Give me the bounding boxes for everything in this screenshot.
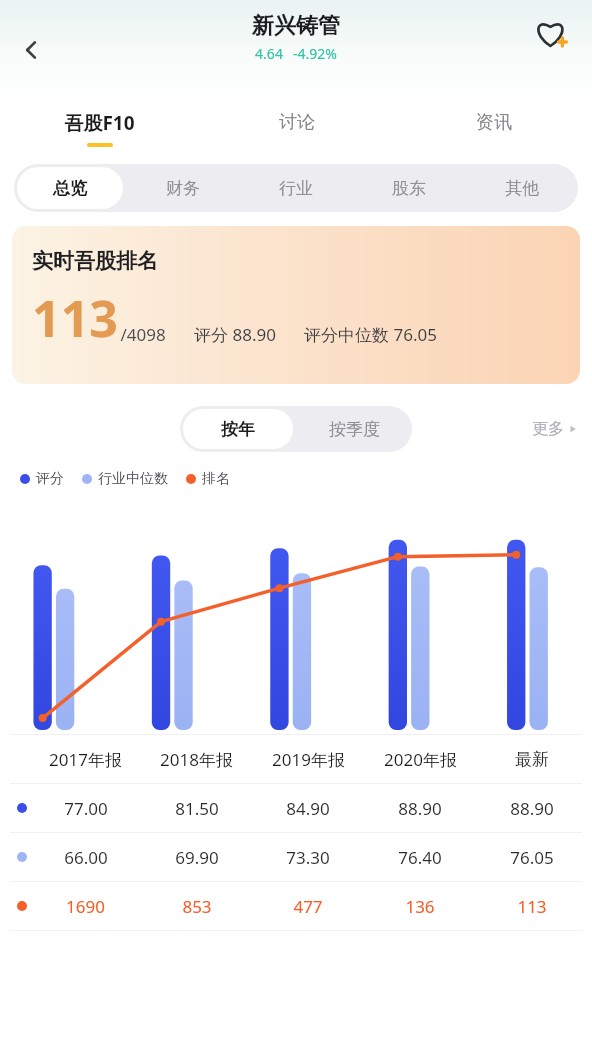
button[interactable]: 按季度 <box>299 409 409 449</box>
staticText: 其他 <box>505 178 539 199</box>
button[interactable]: 实时吾股排名 <box>12 226 580 384</box>
staticText: 113 <box>32 284 118 352</box>
staticText: 新兴铸管 <box>252 12 340 40</box>
staticText: 2017年报 <box>49 748 122 771</box>
staticText: 2019年报 <box>272 748 345 771</box>
staticText: 113 <box>517 895 547 918</box>
staticText: 吾股F10 <box>64 110 135 136</box>
button[interactable]: 股东 <box>355 167 462 209</box>
staticText: 4.64 <box>255 44 283 63</box>
button[interactable]: 资讯 <box>395 100 592 156</box>
staticText: 81.50 <box>175 797 219 820</box>
staticText: 136 <box>405 895 435 918</box>
button[interactable]: 按年 <box>183 409 293 449</box>
staticText: 评分中位数 76.05 <box>304 323 437 346</box>
staticText: 排名 <box>202 470 230 488</box>
staticText: 总览 <box>53 178 87 199</box>
staticText: 477 <box>293 895 323 918</box>
button[interactable]: 更多 <box>532 419 578 439</box>
staticText: 按季度 <box>329 419 380 440</box>
staticText: 88.90 <box>510 797 554 820</box>
button[interactable]: Add to favourites <box>524 6 580 62</box>
button[interactable]: 财务 <box>129 167 236 209</box>
staticText: 评分 88.90 <box>194 323 276 346</box>
staticText: 2020年报 <box>384 748 457 771</box>
staticText: 77.00 <box>64 797 108 820</box>
staticText: 69.90 <box>175 846 219 869</box>
button[interactable]: 讨论 <box>198 100 395 156</box>
staticText: 行业 <box>279 178 313 199</box>
button[interactable]: 其他 <box>468 167 575 209</box>
staticText: -4.92% <box>293 44 337 63</box>
button[interactable]: 吾股F10 <box>0 100 198 156</box>
staticText: 股东 <box>392 178 426 199</box>
staticText: 财务 <box>166 178 200 199</box>
staticText: 最新 <box>515 749 549 770</box>
staticText: 讨论 <box>279 111 315 134</box>
staticText: 84.90 <box>286 797 330 820</box>
staticText: 76.40 <box>398 846 442 869</box>
staticText: 实时吾股排名 <box>32 248 158 274</box>
staticText: 按年 <box>221 419 255 440</box>
staticText: 更多 <box>532 419 564 439</box>
staticText: 1690 <box>66 895 105 918</box>
button[interactable]: 行业 <box>242 167 349 209</box>
staticText: 评分 <box>36 470 64 488</box>
button[interactable]: 总览 <box>17 167 123 209</box>
staticText: /4098 <box>120 323 166 346</box>
staticText: 行业中位数 <box>98 470 168 488</box>
staticText: 76.05 <box>510 846 554 869</box>
staticText: 853 <box>182 895 212 918</box>
button[interactable]: Back <box>6 24 58 76</box>
staticText: 88.90 <box>398 797 442 820</box>
staticText: 66.00 <box>64 846 108 869</box>
staticText: 资讯 <box>476 111 512 134</box>
staticText: 2018年报 <box>160 748 233 771</box>
staticText: 73.30 <box>286 846 330 869</box>
